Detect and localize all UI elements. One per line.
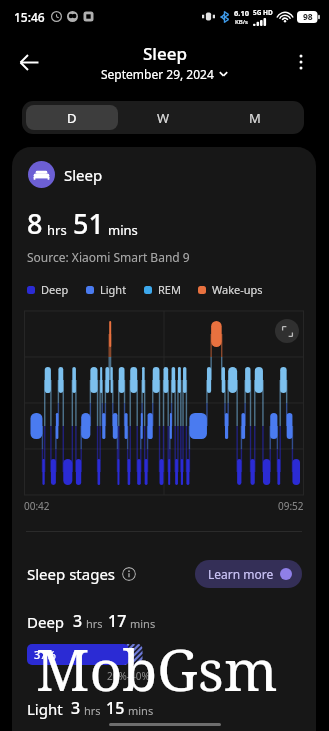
staticText: M <box>249 109 261 127</box>
staticText: 8 <box>27 205 43 242</box>
staticText: MobGsm <box>36 630 278 708</box>
staticText: 51 <box>73 205 104 242</box>
button[interactable]: September 29, 2024 <box>99 66 230 82</box>
button[interactable]: M <box>209 105 300 130</box>
staticText: 00:42 <box>24 499 50 513</box>
button[interactable]: W <box>118 105 209 130</box>
staticText: Deep <box>41 282 69 297</box>
staticText: 98 <box>303 11 313 23</box>
staticText: mins <box>128 703 154 718</box>
button[interactable]: Back <box>8 41 50 83</box>
button[interactable]: Info <box>122 567 136 581</box>
staticText: mins <box>130 616 156 631</box>
staticText: REM <box>158 282 181 297</box>
button[interactable]: Learn more <box>195 560 302 588</box>
staticText: 3 <box>71 697 81 719</box>
staticText: hrs <box>84 703 101 718</box>
staticText: 37% <box>34 647 56 662</box>
staticText: KB/s <box>235 18 248 26</box>
staticText: Sleep <box>64 165 103 185</box>
staticText: 3 <box>73 610 83 632</box>
staticText: 20%-40% <box>107 669 150 683</box>
staticText: 17 <box>108 610 127 632</box>
staticText: Learn more <box>208 566 274 582</box>
staticText: 15 <box>106 697 125 719</box>
staticText: Sleep stages <box>27 564 116 584</box>
staticText: Light <box>27 699 63 719</box>
staticText: hrs <box>86 616 103 631</box>
staticText: 6.10 <box>234 8 249 18</box>
staticText: D <box>67 109 77 127</box>
staticText: 09:52 <box>278 499 304 513</box>
staticText: mins <box>108 221 138 239</box>
staticText: Source: Xiaomi Smart Band 9 <box>27 249 190 265</box>
button[interactable]: Expand chart <box>275 319 299 343</box>
staticText: 15:46 <box>14 9 45 25</box>
staticText: W <box>157 109 170 127</box>
staticText: 5G HD <box>253 8 273 17</box>
staticText: Deep <box>27 612 65 632</box>
staticText: Sleep <box>143 42 187 65</box>
staticText: Wake-ups <box>212 282 263 297</box>
button[interactable]: More options <box>281 42 321 82</box>
staticText: Light <box>100 282 127 297</box>
button[interactable]: D <box>26 105 118 130</box>
staticText: September 29, 2024 <box>101 66 214 82</box>
staticText: hrs <box>47 221 67 239</box>
